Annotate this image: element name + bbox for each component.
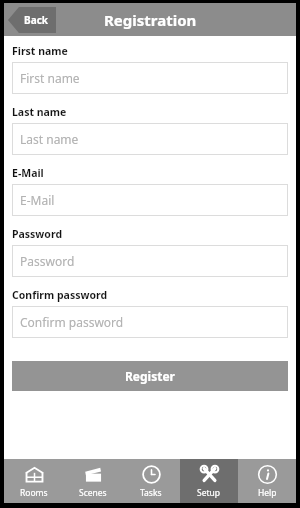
staticText: Last name bbox=[20, 131, 79, 147]
staticText: Last name bbox=[12, 105, 67, 119]
button[interactable]: Password bbox=[12, 245, 288, 277]
staticText: Tasks bbox=[140, 487, 162, 499]
button[interactable]: Help bbox=[238, 459, 296, 503]
staticText: E-Mail bbox=[20, 192, 55, 208]
staticText: E-Mail bbox=[12, 166, 44, 180]
button[interactable]: Setup bbox=[180, 459, 238, 503]
staticText: Back bbox=[24, 13, 48, 27]
staticText: Scenes bbox=[79, 487, 107, 499]
button[interactable]: Tasks bbox=[122, 459, 180, 503]
staticText: First name bbox=[20, 70, 80, 86]
button[interactable]: Confirm password bbox=[12, 306, 288, 338]
button[interactable]: First name bbox=[12, 62, 288, 94]
staticText: Register bbox=[125, 368, 175, 384]
button[interactable]: Last name bbox=[12, 123, 288, 155]
staticText: Setup bbox=[197, 487, 221, 499]
button[interactable]: Rooms bbox=[4, 459, 63, 503]
staticText: Registration bbox=[104, 10, 197, 30]
staticText: First name bbox=[12, 44, 68, 58]
button[interactable]: Register bbox=[12, 361, 288, 391]
staticText: Confirm password bbox=[12, 288, 108, 302]
button[interactable]: Scenes bbox=[63, 459, 122, 503]
staticText: Rooms bbox=[20, 487, 48, 499]
staticText: Password bbox=[20, 253, 75, 269]
staticText: Help bbox=[258, 487, 277, 499]
button[interactable]: Back bbox=[8, 7, 56, 33]
staticText: Confirm password bbox=[20, 314, 124, 330]
button[interactable]: E-Mail bbox=[12, 184, 288, 216]
staticText: Password bbox=[12, 227, 63, 241]
